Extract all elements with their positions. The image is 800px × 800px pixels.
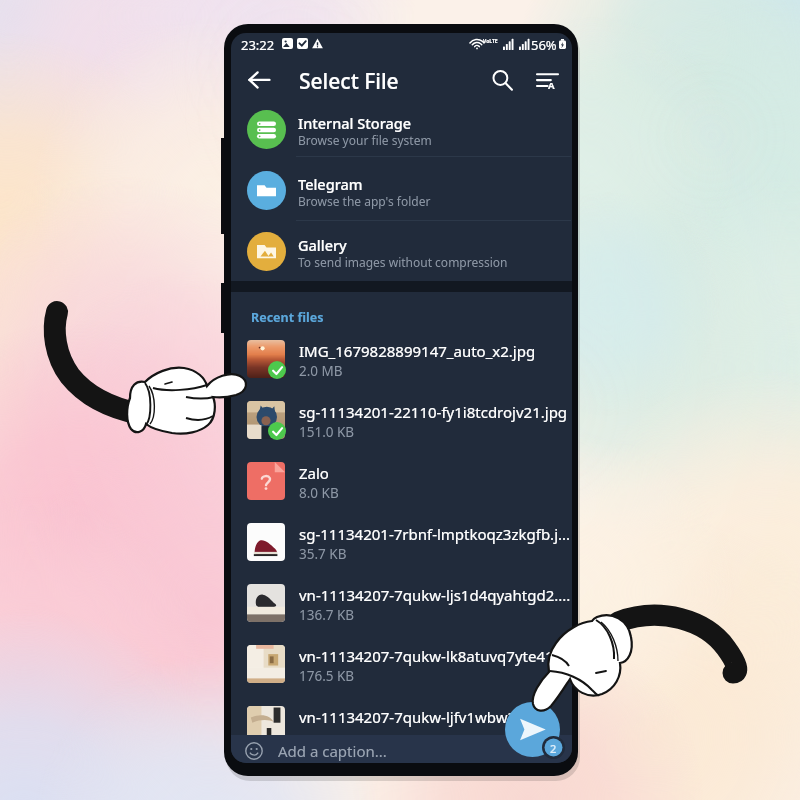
button[interactable]: Gallery bbox=[231, 232, 572, 293]
staticText: sg-11134201-22110-fy1i8tcdrojv21.jpg bbox=[299, 402, 571, 422]
staticText: 8.0 KB bbox=[299, 484, 339, 502]
staticText: 176.5 KB bbox=[299, 667, 355, 685]
button[interactable]: Sort bbox=[523, 56, 571, 104]
button[interactable]: Emoji bbox=[239, 735, 269, 763]
button[interactable]: Telegram bbox=[231, 171, 572, 232]
staticText: To send images without compression bbox=[298, 254, 508, 270]
staticText: vn-11134207-7qukw-ljfv1wbw3 bbox=[299, 707, 571, 727]
button[interactable]: Search bbox=[478, 56, 526, 104]
button[interactable]: sg-11134201-22110-fy1i8tcdrojv21.jpg bbox=[231, 397, 572, 458]
staticText: 23:22 bbox=[241, 36, 275, 54]
staticText: Browse your file system bbox=[298, 132, 432, 148]
staticText: vn-11134207-7qukw-ljs1d4qyahtgd2.... bbox=[299, 585, 571, 605]
button[interactable]: Add a caption... bbox=[269, 735, 499, 763]
staticText: 151.0 KB bbox=[299, 423, 355, 441]
button[interactable]: Zalo bbox=[231, 458, 572, 519]
button[interactable]: vn-11134207-7qukw-ljs1d4qyahtgd2.... bbox=[231, 580, 572, 641]
button[interactable]: Back bbox=[235, 55, 283, 103]
button[interactable]: vn-11134207-7qukw-ljfv1wbw3 bbox=[231, 702, 572, 763]
staticText: 56% bbox=[531, 36, 557, 54]
button[interactable]: Internal Storage bbox=[231, 110, 572, 171]
button[interactable]: IMG_1679828899147_auto_x2.jpg bbox=[231, 336, 572, 397]
staticText: IMG_1679828899147_auto_x2.jpg bbox=[299, 341, 571, 361]
staticText: vn-11134207-7qukw-lk8atuvq7yte41. bbox=[299, 646, 571, 666]
button[interactable]: vn-11134207-7qukw-lk8atuvq7yte41. bbox=[231, 641, 572, 702]
staticText: Add a caption... bbox=[278, 741, 387, 761]
staticText: A bbox=[548, 79, 555, 92]
staticText: Recent files bbox=[251, 309, 324, 326]
button[interactable]: sg-11134201-7rbnf-lmptkoqz3zkgfb.j... bbox=[231, 519, 572, 580]
staticText: Telegram bbox=[298, 174, 363, 194]
staticText: Internal Storage bbox=[298, 113, 412, 133]
staticText: 2 bbox=[550, 741, 557, 756]
staticText: sg-11134201-7rbnf-lmptkoqz3zkgfb.j... bbox=[299, 524, 571, 544]
staticText: 35.7 KB bbox=[299, 545, 347, 563]
staticText: Browse the app's folder bbox=[298, 193, 431, 209]
staticText: VoLTE bbox=[483, 38, 498, 45]
staticText: Zalo bbox=[299, 463, 571, 483]
staticText: Gallery bbox=[298, 235, 347, 255]
staticText: Select File bbox=[299, 67, 399, 96]
button[interactable]: Send bbox=[505, 702, 560, 757]
staticText: 136.7 KB bbox=[299, 606, 355, 624]
staticText: 2.0 MB bbox=[299, 362, 343, 380]
